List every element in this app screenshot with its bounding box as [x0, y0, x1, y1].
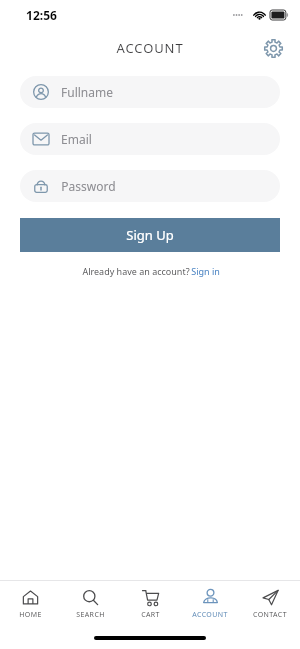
- button[interactable]: Sign in: [191, 265, 220, 277]
- button[interactable]: ACCOUNT: [180, 581, 240, 627]
- staticText: SEARCH: [76, 610, 105, 620]
- button[interactable]: Email: [20, 123, 280, 155]
- staticText: HOME: [19, 610, 42, 620]
- button[interactable]: Settings: [258, 33, 288, 63]
- button[interactable]: SEARCH: [60, 581, 120, 627]
- staticText: Email: [61, 131, 92, 147]
- staticText: CONTACT: [253, 610, 287, 620]
- staticText: 12:56: [26, 7, 57, 23]
- staticText: Already have an account?: [81, 265, 191, 277]
- staticText: Fullname: [61, 84, 113, 100]
- staticText: Password: [61, 178, 116, 194]
- button[interactable]: Password: [20, 170, 280, 202]
- button[interactable]: Fullname: [20, 76, 280, 108]
- staticText: Sign Up: [126, 226, 174, 244]
- button[interactable]: CART: [120, 581, 180, 627]
- staticText: Sign in: [191, 265, 220, 277]
- button[interactable]: Sign Up: [20, 218, 280, 252]
- button[interactable]: CONTACT: [240, 581, 300, 627]
- staticText: CART: [141, 610, 160, 620]
- staticText: ACCOUNT: [192, 610, 228, 620]
- button[interactable]: HOME: [0, 581, 60, 627]
- staticText: ACCOUNT: [116, 39, 184, 57]
